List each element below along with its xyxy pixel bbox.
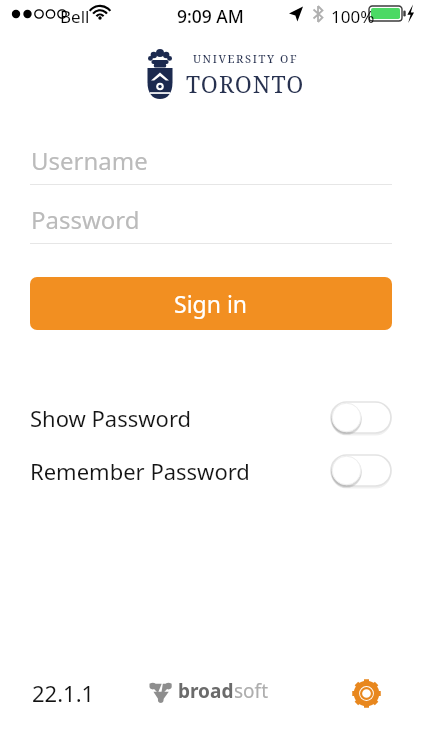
staticText: 9:09 AM <box>177 4 244 28</box>
button[interactable]: Show Password <box>30 398 392 438</box>
button[interactable]: Sign in <box>30 277 392 330</box>
staticText: soft <box>234 678 268 704</box>
other: Show Password <box>330 400 392 436</box>
staticText: broad <box>178 678 234 704</box>
staticText: Sign in <box>174 288 248 319</box>
staticText: 100% <box>331 5 375 28</box>
staticText: TORONTO <box>186 68 305 99</box>
staticText: UNIVERSITY OF <box>193 51 299 66</box>
other: Remember Password <box>330 453 392 489</box>
staticText: 22.1.1 <box>32 678 95 708</box>
button[interactable]: Remember Password <box>30 451 392 491</box>
button[interactable]: Settings <box>344 671 388 715</box>
staticText: Password <box>31 203 140 236</box>
staticText: Username <box>31 144 148 177</box>
staticText: Remember Password <box>30 456 250 486</box>
staticText: Show Password <box>30 403 192 433</box>
staticText: Bell <box>60 5 90 28</box>
